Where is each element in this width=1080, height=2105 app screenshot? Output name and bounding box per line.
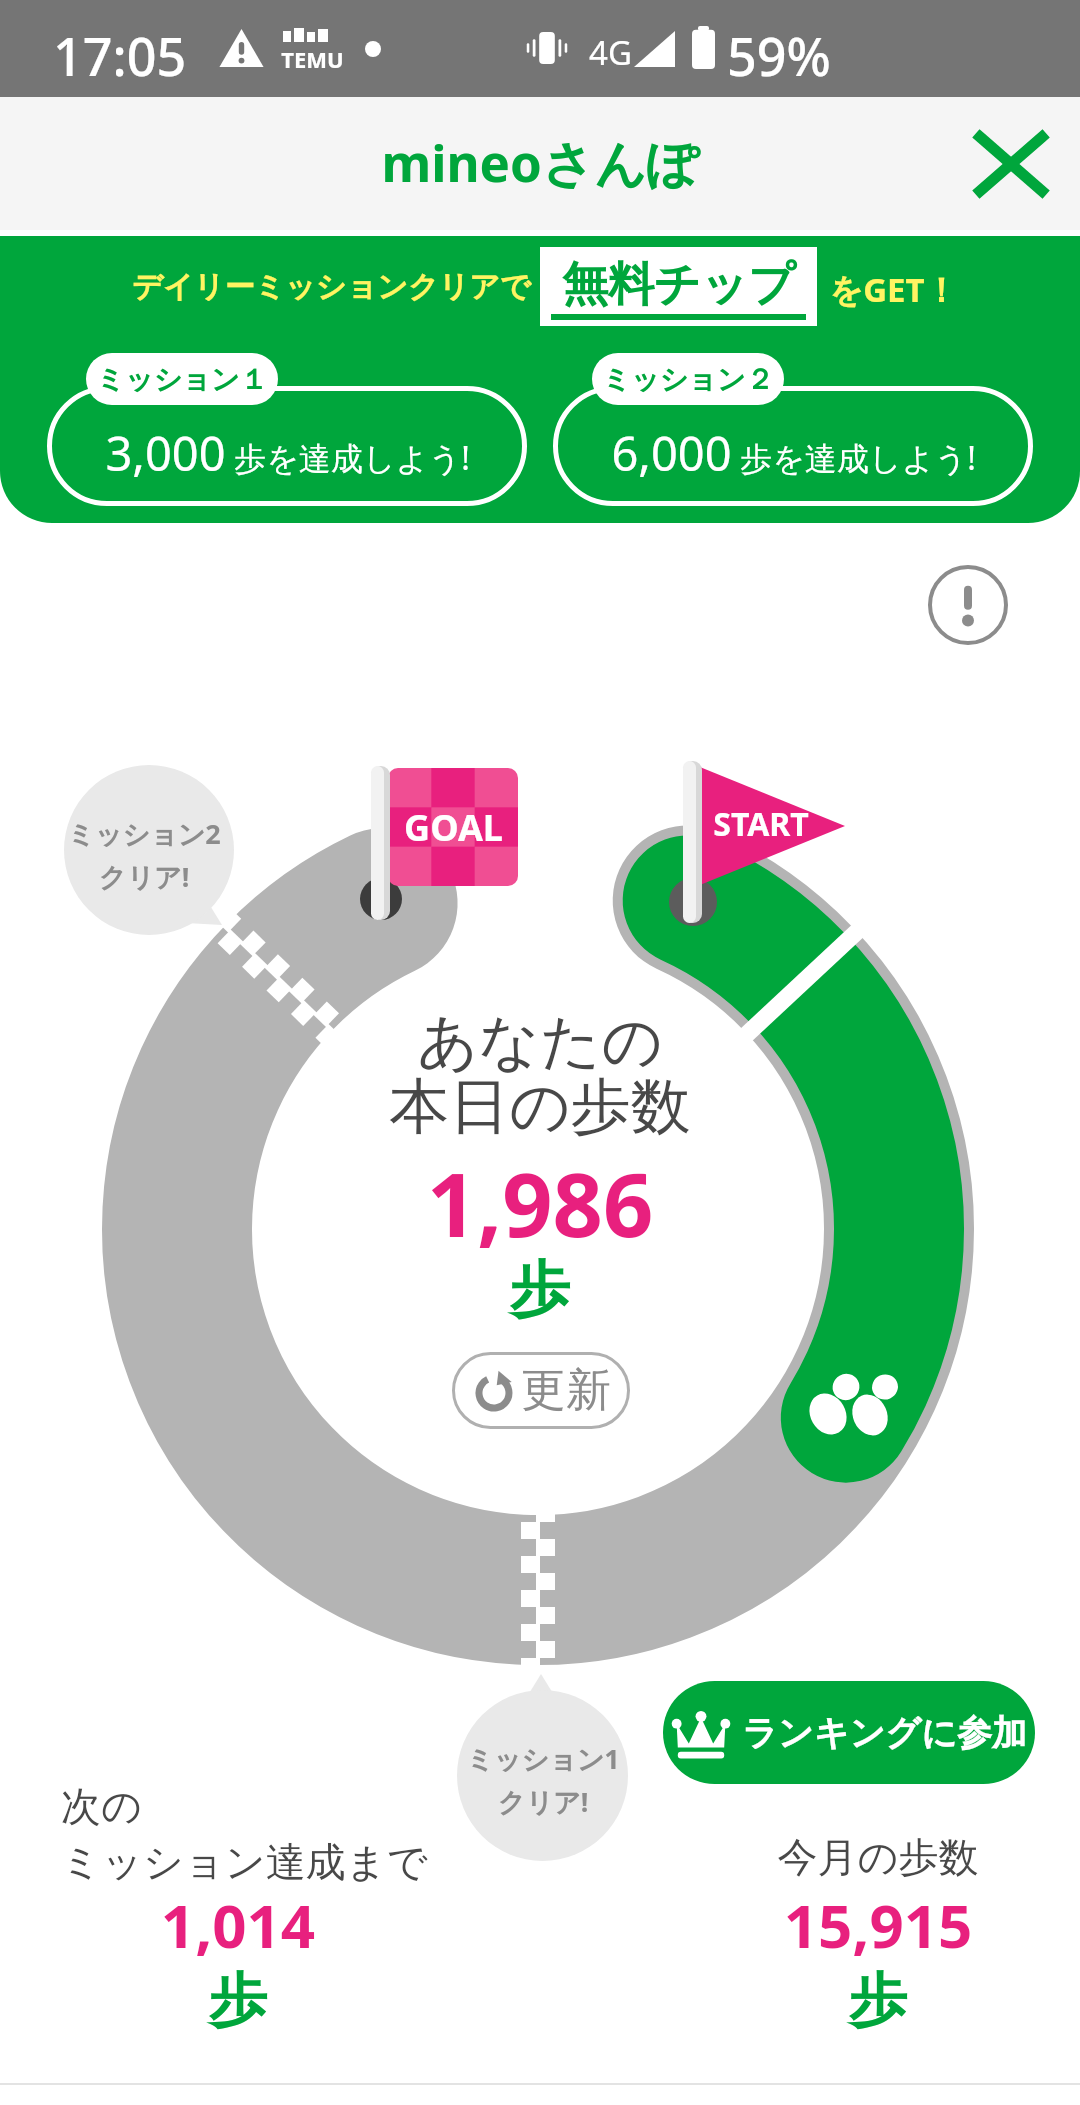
staticText: ミッション2 クリア! xyxy=(44,815,244,895)
staticText: 歩を達成しよう! xyxy=(234,436,470,480)
staticText: 1,986 xyxy=(0,1143,1080,1263)
staticText: 無料チップ xyxy=(551,256,806,314)
staticText: 歩 xyxy=(678,1964,1078,2037)
button[interactable]: 更新 xyxy=(452,1352,630,1429)
staticText: 今月の歩数 xyxy=(678,1832,1078,1882)
staticText: 4G xyxy=(589,30,632,75)
staticText: ミッション1 クリア! xyxy=(443,1740,643,1820)
button[interactable]: 3,000 xyxy=(47,351,527,506)
staticText: GOAL xyxy=(404,803,503,852)
staticText: mineoさんぽ xyxy=(381,127,699,197)
staticText: START xyxy=(713,802,809,846)
staticText: 歩 xyxy=(38,1964,438,2037)
staticText: 更新 xyxy=(521,1362,611,1419)
button[interactable]: ランキングに参加 xyxy=(663,1681,1035,1784)
staticText: 59% xyxy=(727,20,831,91)
staticText: あなたの 本日の歩数 xyxy=(0,1004,1080,1145)
staticText: 15,915 xyxy=(678,1884,1078,1966)
staticText: ランキングに参加 xyxy=(742,1711,1027,1755)
staticText: 歩を達成しよう! xyxy=(740,436,976,480)
button[interactable]: Close xyxy=(967,120,1055,208)
staticText: 17:05 xyxy=(53,20,187,91)
staticText: 歩 xyxy=(0,1252,1080,1328)
staticText: デイリーミッションクリアで xyxy=(132,268,531,306)
staticText: ミッション２ xyxy=(602,362,774,397)
staticText: 次の ミッション達成まで xyxy=(61,1781,428,1888)
button[interactable]: 6,000 xyxy=(553,351,1033,506)
staticText: ミッション１ xyxy=(96,362,268,397)
staticText: TEMU xyxy=(281,44,344,74)
staticText: 6,000 xyxy=(611,421,732,485)
staticText: をGET！ xyxy=(829,267,958,312)
staticText: 1,014 xyxy=(38,1884,438,1966)
button[interactable]: Information xyxy=(925,562,1011,648)
staticText: 3,000 xyxy=(105,421,226,485)
